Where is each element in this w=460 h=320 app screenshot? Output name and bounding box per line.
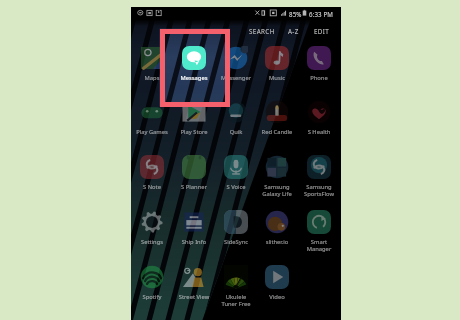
staticText: Maps: [131, 74, 173, 82]
button[interactable]: Play Games: [131, 99, 173, 141]
button[interactable]: Samsung Galaxy Life: [256, 154, 298, 196]
staticText: Samsung SportsFlow: [298, 183, 340, 198]
button[interactable]: Settings: [131, 209, 173, 251]
button[interactable]: Music: [256, 45, 298, 87]
button[interactable]: SEARCH: [247, 24, 277, 38]
staticText: 6:33 PM: [309, 10, 333, 18]
staticText: S Planner: [173, 183, 215, 191]
button[interactable]: S Health: [298, 99, 340, 141]
staticText: slither.io: [256, 238, 298, 246]
staticText: EDIT: [314, 27, 330, 36]
staticText: Samsung Galaxy Life: [256, 183, 298, 198]
staticText: Quik: [215, 128, 257, 136]
staticText: S Health: [298, 128, 340, 136]
button[interactable]: Video: [256, 264, 298, 306]
staticText: S Note: [131, 183, 173, 191]
staticText: Music: [256, 74, 298, 82]
staticText: Messenger: [215, 74, 257, 82]
staticText: Play Store: [173, 128, 215, 136]
staticText: A-Z: [288, 27, 299, 36]
button[interactable]: SideSync: [215, 209, 257, 251]
button[interactable]: slither.io: [256, 209, 298, 251]
staticText: Ship Info: [173, 238, 215, 246]
button[interactable]: S Planner: [173, 154, 215, 196]
button[interactable]: S Note: [131, 154, 173, 196]
button[interactable]: EDIT: [312, 24, 332, 38]
button[interactable]: Ship Info: [173, 209, 215, 251]
button[interactable]: Samsung SportsFlow: [298, 154, 340, 196]
button[interactable]: Messages: [173, 45, 215, 87]
staticText: SEARCH: [249, 27, 275, 36]
staticText: Phone: [298, 74, 340, 82]
button[interactable]: A-Z: [286, 24, 301, 38]
staticText: Street View: [173, 293, 215, 301]
staticText: Red Candle: [256, 128, 298, 136]
button[interactable]: Maps: [131, 45, 173, 87]
staticText: Video: [256, 293, 298, 301]
button[interactable]: Ukulele Tuner Free: [215, 264, 257, 306]
staticText: Messages: [173, 74, 215, 82]
button[interactable]: Messenger: [215, 45, 257, 87]
button[interactable]: Red Candle: [256, 99, 298, 141]
staticText: Settings: [131, 238, 173, 246]
staticText: Spotify: [131, 293, 173, 301]
staticText: 85%: [289, 10, 302, 18]
button[interactable]: Quik: [215, 99, 257, 141]
staticText: SideSync: [215, 238, 257, 246]
button[interactable]: Play Store: [173, 99, 215, 141]
staticText: Ukulele Tuner Free: [215, 293, 257, 308]
button[interactable]: S Voice: [215, 154, 257, 196]
button[interactable]: Smart Manager: [298, 209, 340, 251]
button[interactable]: Street View: [173, 264, 215, 306]
staticText: S Voice: [215, 183, 257, 191]
button[interactable]: Phone: [298, 45, 340, 87]
button[interactable]: Spotify: [131, 264, 173, 306]
staticText: Play Games: [131, 128, 173, 136]
staticText: Smart Manager: [298, 238, 340, 253]
